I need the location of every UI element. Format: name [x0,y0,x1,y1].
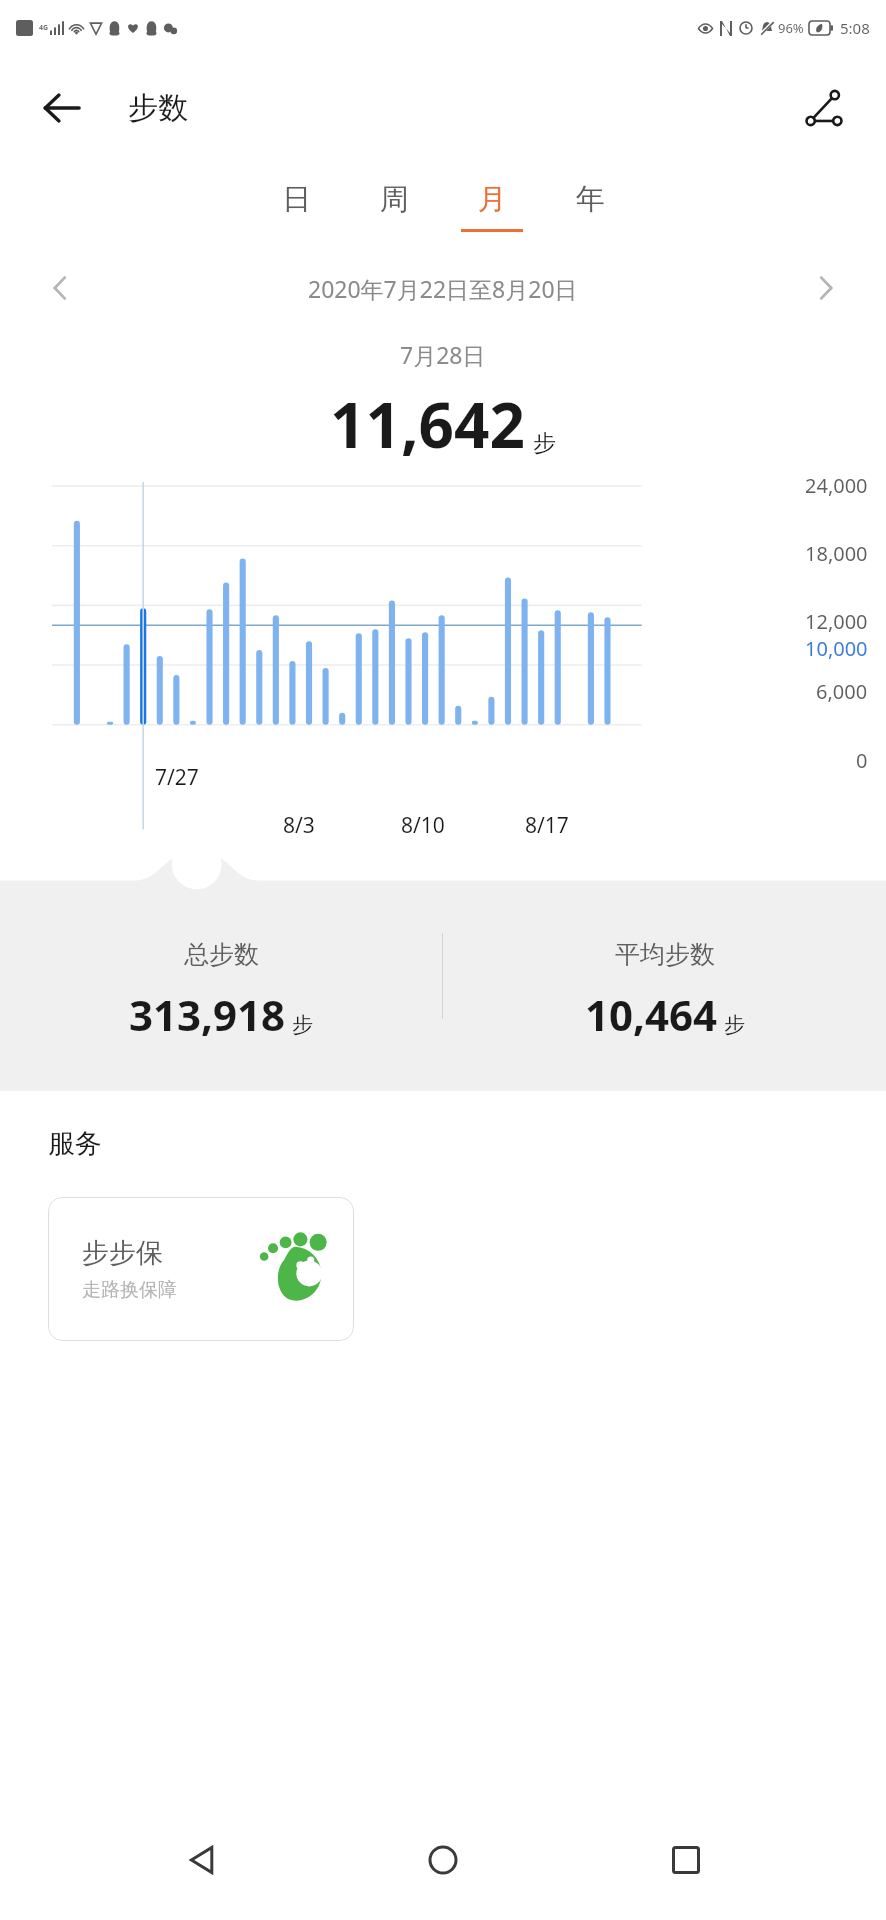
staticText: 年 [576,181,605,218]
staticText: 24,000 [805,472,868,499]
staticText: 11,642 [330,382,525,466]
staticText: 5:08 [840,18,870,38]
staticText: 月 [478,181,507,218]
button[interactable]: Next period [800,262,852,314]
staticText: 周 [380,181,409,218]
staticText: 313,918 [129,986,286,1043]
staticText: 7月28日 [400,339,486,370]
staticText: 步 [533,429,556,458]
button[interactable]: 平均步数 [443,861,886,1091]
button[interactable]: 总步数 [0,861,442,1091]
staticText: 步数 [128,89,188,127]
button[interactable]: 月 [443,161,541,251]
staticText: 步步保 [82,1236,163,1270]
staticText: 10,000 [805,635,868,662]
staticText: 0 [856,747,868,774]
staticText: 96% [778,19,804,37]
button[interactable]: Recents [644,1818,728,1902]
staticText: 10,464 [585,986,718,1043]
staticText: 步 [724,1012,745,1038]
button[interactable]: 步步保 [48,1197,354,1341]
button[interactable]: 周 [345,161,443,251]
staticText: 8/3 [283,811,315,840]
button[interactable]: Share [796,80,852,136]
staticText: 4G [39,23,49,33]
button[interactable]: Back [36,82,88,134]
button[interactable]: 年 [541,161,639,251]
staticText: 7/27 [155,763,199,792]
staticText: 服务 [48,1127,102,1161]
staticText: 走路换保障 [82,1278,177,1302]
staticText: 2020年7月22日至8月20日 [308,273,578,304]
staticText: 8/10 [401,811,445,840]
button[interactable]: Previous period [34,262,86,314]
staticText: 18,000 [805,540,868,567]
staticText: 总步数 [184,939,259,970]
button[interactable]: 日 [247,161,345,251]
staticText: 12,000 [805,608,868,635]
button[interactable]: Home [401,1818,485,1902]
staticText: 平均步数 [615,939,715,970]
staticText: 8/17 [525,811,569,840]
staticText: 6,000 [816,678,868,705]
button[interactable]: Back [159,1818,243,1902]
staticText: 步 [292,1012,313,1038]
staticText: 日 [282,181,311,218]
